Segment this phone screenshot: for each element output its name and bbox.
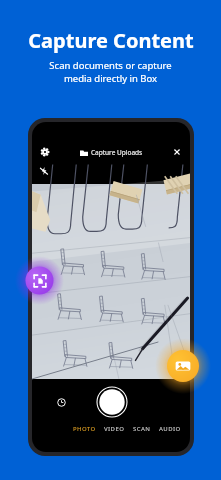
staticText: AUDIO [159,425,181,433]
button[interactable]: Scan document [15,256,64,305]
button[interactable]: Open gallery [155,338,211,394]
staticText: Scan documents or capture media directly… [49,59,172,85]
button[interactable]: Flash off [40,167,48,175]
button[interactable]: PHOTO [73,425,96,433]
button[interactable]: Shutter [97,387,127,417]
button[interactable]: VIDEO [104,425,125,433]
button[interactable]: Capture Uploads [80,148,143,157]
button[interactable]: Close [173,148,181,156]
button[interactable]: SCAN [133,425,151,433]
staticText: Capture Uploads [91,148,143,157]
staticText: PHOTO [73,425,96,433]
staticText: Capture Content [28,27,194,54]
button[interactable]: Timer [57,398,66,407]
staticText: VIDEO [104,425,125,433]
staticText: SCAN [133,425,151,433]
button[interactable]: Settings [41,148,49,156]
button[interactable]: AUDIO [159,425,181,433]
